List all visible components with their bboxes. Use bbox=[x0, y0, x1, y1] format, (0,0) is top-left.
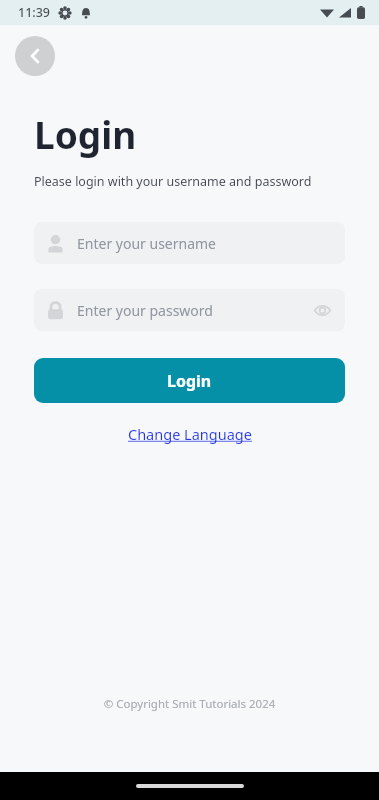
staticText: Please login with your username and pass… bbox=[34, 173, 312, 190]
staticText: Login bbox=[167, 370, 212, 392]
staticText: © Copyright Smit Tutorials 2024 bbox=[0, 696, 379, 712]
staticText: Enter your password bbox=[77, 301, 213, 320]
button[interactable]: Back bbox=[15, 36, 55, 76]
staticText: 11:39 bbox=[18, 4, 51, 21]
staticText: Enter your username bbox=[77, 234, 217, 253]
staticText: Change Language bbox=[128, 424, 252, 444]
button[interactable]: Show password bbox=[311, 299, 333, 321]
button[interactable]: Enter your password bbox=[34, 289, 345, 331]
button[interactable]: Login bbox=[34, 358, 345, 403]
button[interactable]: Enter your username bbox=[34, 222, 345, 264]
staticText: Login bbox=[34, 109, 137, 159]
button[interactable]: Change Language bbox=[118, 419, 262, 449]
